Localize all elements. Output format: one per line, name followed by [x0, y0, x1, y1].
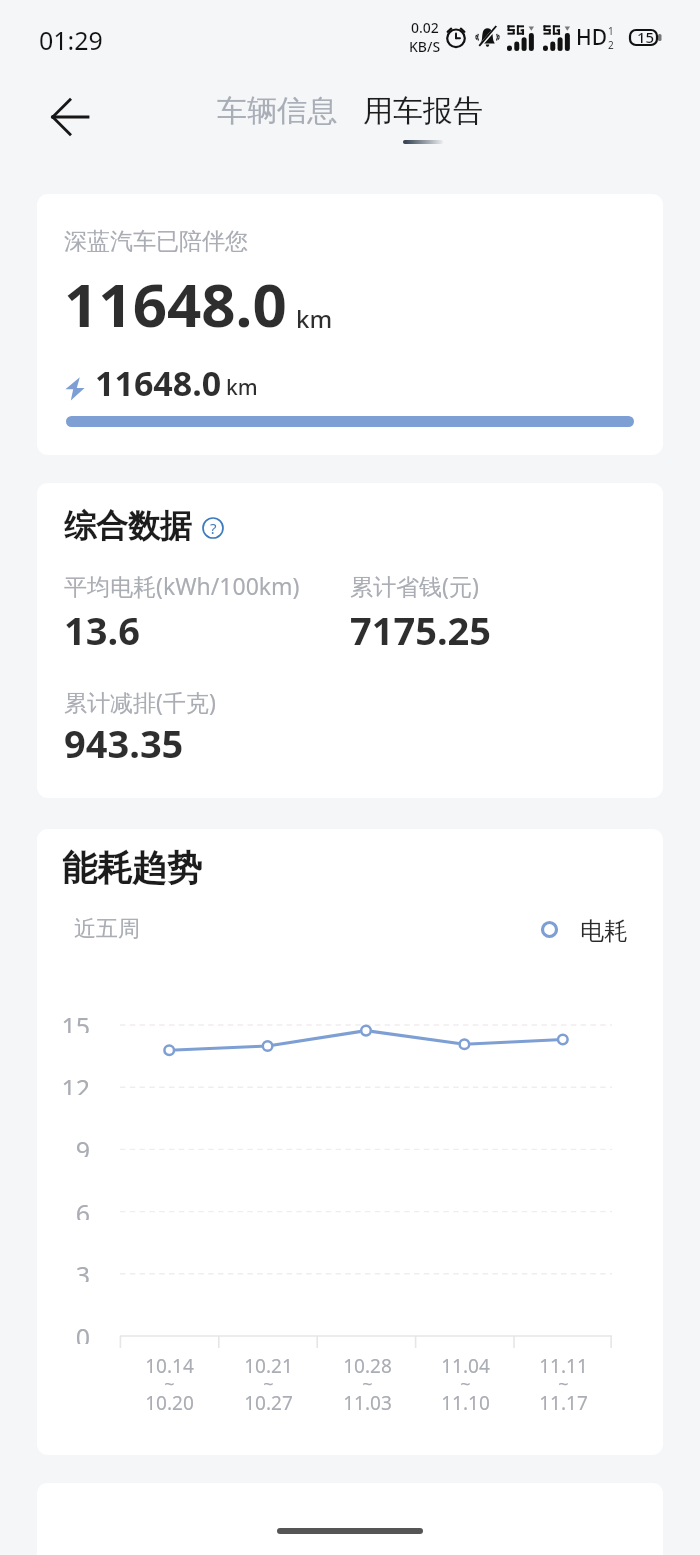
staticText: ~ [164, 1372, 175, 1397]
staticText: 10.21 [244, 1353, 293, 1379]
staticText: ~ [263, 1372, 274, 1397]
staticText: 01:29 [39, 23, 103, 57]
staticText: 10.27 [244, 1390, 293, 1416]
staticText: ~ [558, 1372, 569, 1397]
staticText: 10.14 [145, 1353, 194, 1379]
button[interactable]: Back [42, 89, 98, 145]
staticText: 11.11 [539, 1353, 588, 1379]
staticText: 11.10 [441, 1390, 490, 1416]
staticText: 13.6 [64, 604, 140, 656]
button[interactable]: 电耗 [541, 917, 628, 947]
staticText: 0 [75, 1320, 90, 1344]
staticText: ~ [460, 1372, 471, 1397]
button[interactable]: 用车报告 [357, 92, 489, 144]
staticText: 15 [637, 27, 655, 47]
button[interactable]: 车辆信息 [211, 92, 343, 130]
staticText: 累计减排(千克) [64, 686, 216, 717]
button[interactable]: 深蓝汽车已陪伴您 [37, 194, 663, 455]
staticText: ~ [362, 1372, 373, 1397]
staticText: 11.03 [343, 1390, 392, 1416]
staticText: 11648.0 [64, 263, 287, 345]
staticText: 15 [61, 1009, 90, 1033]
staticText: 深蓝汽车已陪伴您 [64, 227, 248, 256]
staticText: 943.35 [64, 717, 184, 769]
staticText: 平均电耗(kWh/100km) [64, 570, 300, 601]
staticText: 12 [61, 1071, 90, 1095]
staticText: 能耗趋势 [62, 846, 202, 890]
staticText: 11.17 [539, 1390, 588, 1416]
staticText: km [296, 302, 333, 335]
staticText: 10.20 [145, 1390, 194, 1416]
staticText: 近五周 [74, 915, 140, 943]
staticText: 11648.0 [95, 360, 222, 406]
staticText: 7175.25 [350, 604, 492, 656]
staticText: KB/S [409, 37, 441, 56]
staticText: 11.04 [441, 1353, 490, 1379]
staticText: 累计省钱(元) [350, 570, 479, 601]
staticText: 用车报告 [363, 92, 483, 130]
staticText: 9 [75, 1133, 90, 1157]
staticText: 车辆信息 [217, 92, 337, 130]
staticText: 6 [75, 1196, 90, 1220]
staticText: 2 [608, 38, 614, 52]
staticText: 综合数据 [64, 506, 192, 546]
staticText: 0.02 [411, 18, 439, 37]
staticText: km [226, 373, 258, 402]
staticText: 10.28 [343, 1353, 392, 1379]
staticText: HD [576, 23, 608, 52]
staticText: 电耗 [580, 916, 628, 946]
staticText: ? [210, 518, 217, 538]
staticText: 1 [608, 24, 614, 38]
button[interactable]: Info [201, 516, 225, 540]
staticText: 3 [75, 1258, 90, 1282]
